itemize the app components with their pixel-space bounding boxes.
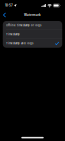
staticText: 10:57 — [5, 4, 13, 7]
button[interactable]: Back — [0, 11, 9, 19]
button[interactable]: Timestamp — [3, 30, 62, 39]
staticText: Timestamp and logs — [6, 42, 33, 45]
button[interactable]: Timestamp and logs — [3, 39, 62, 48]
button[interactable]: Offline timestamp or logs — [3, 21, 62, 30]
staticText: Timestamp — [6, 33, 20, 36]
staticText: Offline timestamp or logs — [6, 24, 41, 27]
staticText: Watermark — [24, 13, 41, 17]
